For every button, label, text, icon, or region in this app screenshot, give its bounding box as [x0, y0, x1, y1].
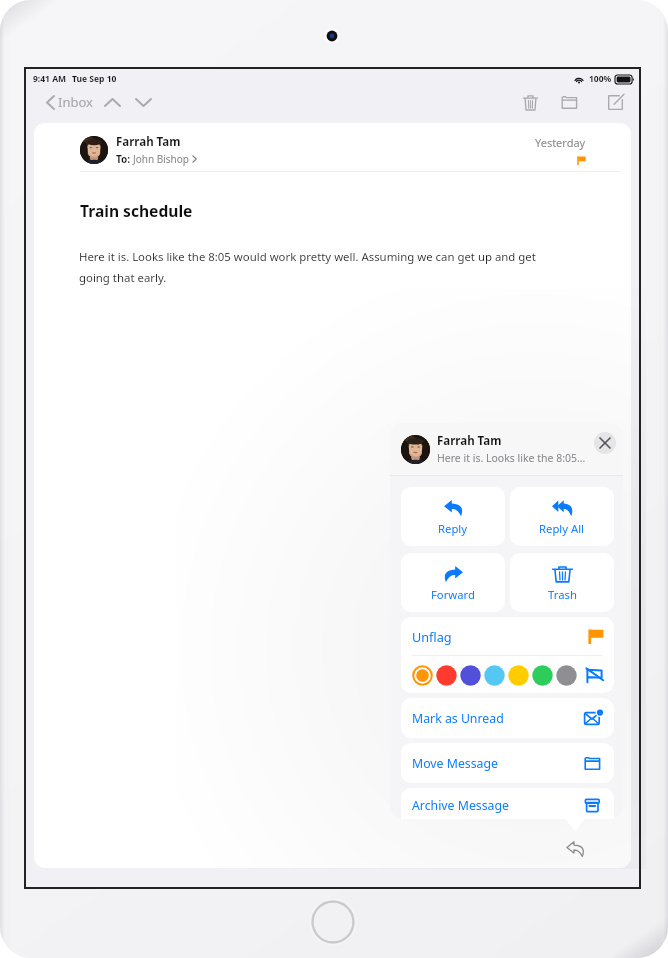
staticText: Reply All [539, 521, 585, 536]
button[interactable]: Flag colour [435, 664, 457, 686]
button[interactable]: Next message [131, 90, 155, 114]
button[interactable]: Previous message [100, 90, 124, 114]
button[interactable]: Unflag [401, 617, 614, 655]
button[interactable]: Forward [401, 553, 505, 612]
button[interactable]: Reply [563, 837, 587, 861]
staticText: Farrah Tam [116, 134, 181, 150]
staticText: Here it is. Looks like the 8:05 would wo… [79, 249, 561, 286]
staticText: Move Message [412, 755, 498, 772]
button[interactable]: Flag colour [555, 664, 577, 686]
button[interactable]: Delete [517, 89, 543, 115]
button[interactable]: Trash [510, 553, 614, 612]
button[interactable]: Inbox [46, 89, 93, 115]
button[interactable]: Move to folder [558, 89, 584, 115]
staticText: Yesterday [535, 135, 586, 150]
button[interactable]: Mark as Unread [401, 698, 614, 738]
button[interactable]: Move Message [401, 743, 614, 783]
staticText: John Bishop [133, 152, 189, 166]
button[interactable]: Flag colour [459, 664, 481, 686]
staticText: Unflag [412, 628, 452, 645]
staticText: Archive Message [412, 797, 510, 814]
staticText: Reply [438, 521, 468, 536]
button[interactable]: Farrah Tam [390, 423, 623, 475]
staticText: Here it is. Looks like the 8:05… [437, 451, 586, 465]
button[interactable]: Compose [602, 89, 628, 115]
button[interactable]: Flag colour [483, 664, 505, 686]
staticText: 9:41 AM [33, 73, 67, 85]
staticText: Train schedule [80, 200, 193, 221]
staticText: Forward [431, 587, 475, 602]
button[interactable]: Archive Message [401, 788, 614, 819]
staticText: To: [116, 152, 133, 166]
button[interactable]: Flag colour [507, 664, 529, 686]
staticText: Inbox [58, 93, 93, 111]
staticText: 100% [589, 73, 612, 85]
button[interactable]: Reply [401, 487, 505, 546]
button[interactable]: Reply All [510, 487, 614, 546]
button[interactable]: Flag colour [411, 664, 433, 686]
staticText: Tue Sep 10 [72, 73, 117, 85]
staticText: Farrah Tam [437, 433, 502, 449]
button[interactable]: Flag colour [531, 664, 553, 686]
staticText: Mark as Unread [412, 710, 504, 727]
staticText: Trash [548, 587, 577, 602]
button[interactable]: Close [594, 432, 616, 454]
